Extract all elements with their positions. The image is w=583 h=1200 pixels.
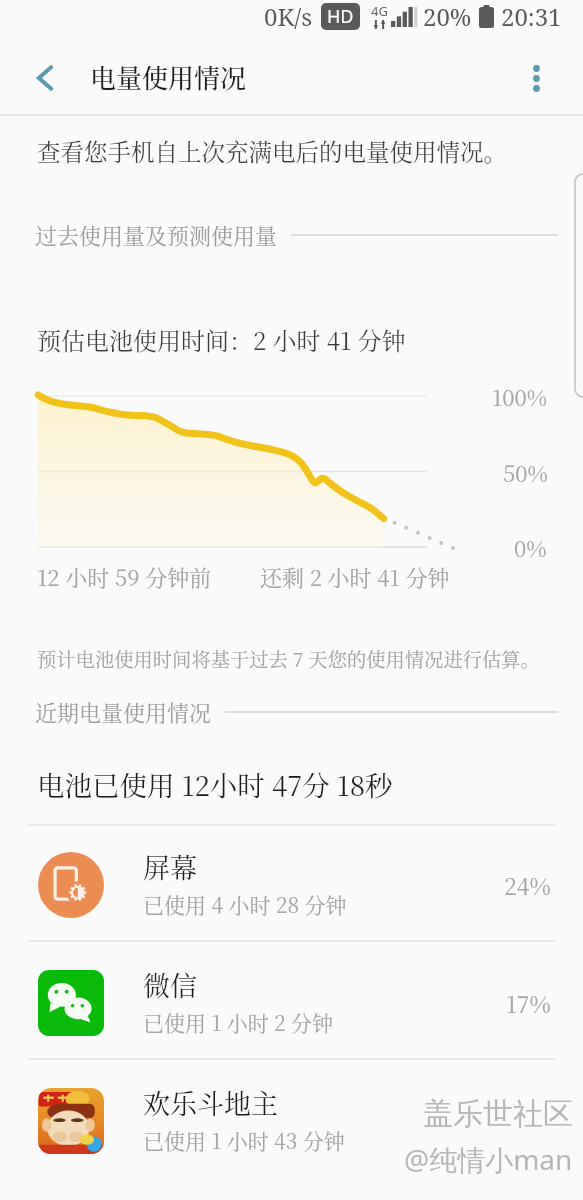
staticText: 还剩 2 小时 41 分钟 xyxy=(260,561,450,593)
staticText: 12 小时 59 分钟前 xyxy=(37,561,212,593)
staticText: 0% xyxy=(514,532,547,564)
staticText: 已使用 1 小时 2 分钟 xyxy=(143,1007,334,1037)
staticText: 预计电池使用时间将基于过去 7 天您的使用情况进行估算。 xyxy=(37,645,540,673)
button[interactable]: Back xyxy=(0,44,90,116)
button[interactable]: 屏幕 xyxy=(0,837,583,933)
staticText: 微信 xyxy=(143,965,197,1004)
staticText: 20% xyxy=(423,0,472,33)
staticText: 查看您手机自上次充满电后的电量使用情况。 xyxy=(37,134,507,168)
staticText: 24% xyxy=(504,869,551,902)
button[interactable]: More options xyxy=(490,44,583,116)
button[interactable]: 微信 xyxy=(0,955,583,1051)
staticText: 近期电量使用情况 xyxy=(35,696,212,728)
staticText: 100% xyxy=(492,381,548,413)
staticText: 已使用 1 小时 43 分钟 xyxy=(143,1125,345,1155)
staticText: 电量使用情况 xyxy=(90,58,247,95)
staticText: 17% xyxy=(506,987,551,1020)
staticText: 过去使用量及预测使用量 xyxy=(35,219,278,251)
staticText: 0K/s xyxy=(264,0,312,33)
staticText: 预估电池使用时间：2 小时 41 分钟 xyxy=(37,322,406,356)
staticText: HD xyxy=(327,4,354,29)
staticText: 4G xyxy=(371,2,388,20)
staticText: 20:31 xyxy=(501,0,562,33)
staticText: 已使用 4 小时 28 分钟 xyxy=(143,889,347,919)
staticText: 电池已使用 12小时 47分 18秒 xyxy=(37,764,393,804)
button[interactable]: 欢乐斗地主 xyxy=(0,1073,583,1169)
staticText: 50% xyxy=(503,457,548,489)
staticText: @纯情小man xyxy=(404,1140,573,1178)
staticText: 欢乐斗地主 xyxy=(143,1083,278,1122)
staticText: 屏幕 xyxy=(143,847,197,886)
staticText: 盖乐世社区 xyxy=(423,1095,573,1133)
